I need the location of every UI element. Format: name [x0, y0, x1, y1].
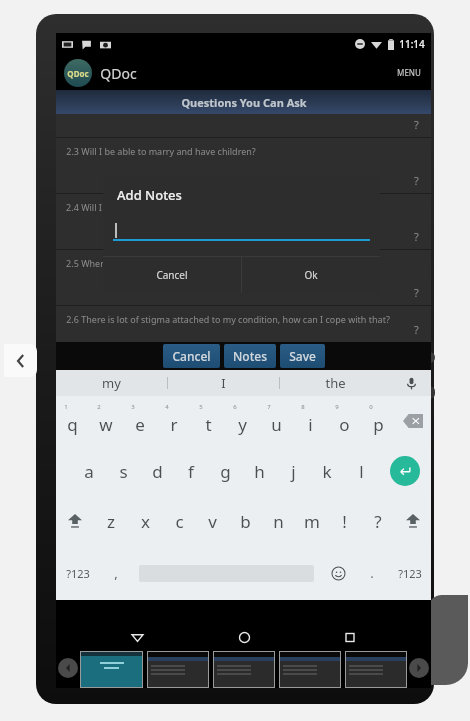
staticText: c: [175, 510, 184, 533]
staticText: p: [373, 413, 384, 436]
button[interactable]: Recent app: [346, 652, 406, 687]
staticText: m: [304, 510, 320, 533]
staticText: ?123: [398, 566, 422, 581]
staticText: QDoc: [100, 64, 137, 83]
button[interactable]: Shift: [394, 496, 431, 546]
button[interactable]: 5: [191, 396, 225, 446]
button[interactable]: z: [94, 496, 128, 546]
button[interactable]: 1: [56, 396, 89, 446]
button[interactable]: j: [276, 446, 310, 496]
staticText: j: [291, 460, 296, 483]
button[interactable]: 2.4 Will I: [56, 194, 431, 249]
button[interactable]: ?123: [56, 546, 100, 600]
staticText: h: [254, 460, 265, 483]
button[interactable]: Recent app: [81, 652, 142, 687]
button[interactable]: 9: [327, 396, 361, 446]
button[interactable]: Enter: [378, 446, 431, 496]
staticText: n: [273, 510, 284, 533]
button[interactable]: 0: [361, 396, 395, 446]
button[interactable]: I: [168, 370, 279, 396]
button[interactable]: Previous: [4, 344, 37, 377]
button[interactable]: Scroll left: [58, 658, 78, 678]
button[interactable]: Recent app: [214, 652, 274, 687]
button[interactable]: k: [310, 446, 344, 496]
button[interactable]: Backspace: [395, 396, 431, 446]
button[interactable]: Cancel: [103, 257, 241, 293]
button[interactable]: b: [229, 496, 262, 546]
button[interactable]: 2: [89, 396, 123, 446]
button[interactable]: 8: [293, 396, 327, 446]
button[interactable]: Recent app: [280, 652, 340, 687]
button[interactable]: .: [356, 546, 388, 600]
staticText: Ok: [304, 268, 318, 282]
button[interactable]: Back: [127, 628, 147, 646]
button[interactable]: 2.5 Where can I get more information abo…: [56, 250, 431, 305]
button[interactable]: l: [344, 446, 378, 496]
staticText: f: [188, 460, 194, 483]
button[interactable]: Voice input: [391, 370, 431, 396]
button[interactable]: Save: [280, 344, 325, 368]
staticText: .: [370, 564, 374, 582]
staticText: ?123: [66, 566, 90, 581]
button[interactable]: MENU: [387, 59, 431, 86]
button[interactable]: 2.6 There is lot of stigma attached to m…: [56, 306, 431, 342]
button[interactable]: 6: [225, 396, 259, 446]
button[interactable]: Notes: [224, 344, 276, 368]
staticText: 8: [301, 403, 305, 411]
staticText: 4: [165, 403, 169, 411]
button[interactable]: a: [72, 446, 106, 496]
staticText: o: [339, 413, 350, 436]
button[interactable]: Recent app: [148, 652, 208, 687]
button[interactable]: Shift: [56, 496, 94, 546]
button[interactable]: Ok: [242, 257, 380, 293]
button[interactable]: s: [106, 446, 140, 496]
staticText: ?: [414, 117, 419, 132]
staticText: q: [67, 413, 78, 436]
button[interactable]: !: [328, 496, 361, 546]
button[interactable]: d: [140, 446, 174, 496]
button[interactable]: v: [196, 496, 229, 546]
staticText: 2: [97, 403, 101, 411]
button[interactable]: n: [262, 496, 295, 546]
button[interactable]: 3: [123, 396, 157, 446]
button[interactable]: h: [242, 446, 276, 496]
staticText: x: [141, 510, 150, 533]
button[interactable]: g: [208, 446, 242, 496]
button[interactable]: Emoji: [320, 546, 356, 600]
staticText: ?: [414, 285, 419, 300]
button[interactable]: Space: [132, 546, 320, 600]
button[interactable]: x: [128, 496, 162, 546]
staticText: ?: [414, 173, 419, 188]
button[interactable]: f: [174, 446, 208, 496]
staticText: 2.4 Will I: [66, 201, 102, 213]
button[interactable]: the: [280, 370, 391, 396]
staticText: z: [107, 510, 115, 533]
staticText: 5: [199, 403, 203, 411]
staticText: I: [221, 374, 226, 392]
button[interactable]: ,: [100, 546, 132, 600]
button[interactable]: c: [162, 496, 196, 546]
button[interactable]: 2.3 Will I be able to marry and have chi…: [56, 138, 431, 193]
button[interactable]: Scroll right: [409, 658, 429, 678]
staticText: Cancel: [156, 268, 188, 282]
button[interactable]: Home: [234, 628, 254, 646]
button[interactable]: Cancel: [163, 344, 220, 368]
button[interactable]: my: [56, 370, 167, 396]
button[interactable]: m: [295, 496, 328, 546]
staticText: MENU: [397, 67, 421, 78]
staticText: a: [84, 460, 94, 483]
staticText: Cancel: [172, 348, 211, 364]
staticText: w: [99, 413, 113, 436]
button[interactable]: Recents: [340, 628, 360, 646]
button[interactable]: ?: [361, 496, 394, 546]
staticText: y: [238, 413, 247, 436]
button[interactable]: ?123: [388, 546, 431, 600]
staticText: 6: [233, 403, 237, 411]
button[interactable]: 7: [259, 396, 293, 446]
staticText: k: [322, 460, 332, 483]
button[interactable]: Questions You Can Ask: [56, 90, 431, 114]
button[interactable]: 4: [157, 396, 191, 446]
staticText: s: [119, 460, 128, 483]
staticText: my: [102, 374, 121, 392]
